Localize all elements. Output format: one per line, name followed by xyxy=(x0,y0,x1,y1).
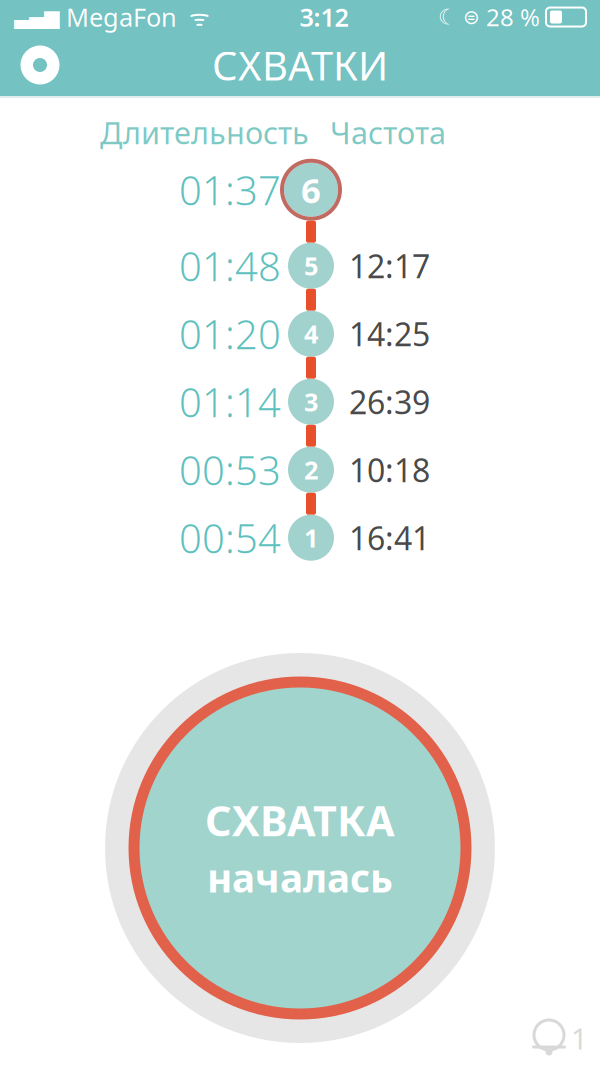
staticText: ⊜ xyxy=(457,6,486,28)
staticText: 3:12 xyxy=(299,0,348,34)
staticText: 1 xyxy=(571,1018,588,1057)
staticText: 6 xyxy=(301,167,321,213)
staticText: 01:20 xyxy=(179,307,281,360)
staticText: 16:41 xyxy=(349,516,430,559)
button[interactable]: СХВАТКА xyxy=(128,676,472,1020)
staticText: 1 xyxy=(304,521,318,554)
staticText: 00:54 xyxy=(179,511,281,564)
staticText: 01:48 xyxy=(179,239,281,292)
staticText: СХВАТКА xyxy=(205,793,395,848)
staticText: началась xyxy=(207,852,393,903)
staticText: MegaFon xyxy=(59,0,177,34)
staticText: 28 % xyxy=(486,1,540,33)
staticText: 3 xyxy=(304,385,318,418)
staticText: 01:37 xyxy=(179,163,281,216)
staticText: 01:14 xyxy=(179,375,281,428)
staticText: СХВАТКИ xyxy=(212,38,388,91)
staticText: ▃▄▆ xyxy=(14,6,59,28)
staticText: 5 xyxy=(304,249,318,282)
staticText: 14:25 xyxy=(349,312,430,355)
staticText: 2 xyxy=(304,453,318,486)
staticText: ☾ xyxy=(438,5,457,29)
staticText: 00:53 xyxy=(179,443,281,496)
staticText: Длительность xyxy=(100,112,309,153)
button[interactable]: Уведомления xyxy=(529,1016,600,1066)
staticText: ᯤ xyxy=(177,2,210,32)
staticText: 12:17 xyxy=(349,244,430,287)
staticText: Частота xyxy=(330,112,446,153)
button[interactable]: Настройки xyxy=(10,34,70,96)
staticText: 10:18 xyxy=(349,448,430,491)
staticText: 4 xyxy=(304,317,318,350)
staticText: 26:39 xyxy=(349,380,430,423)
